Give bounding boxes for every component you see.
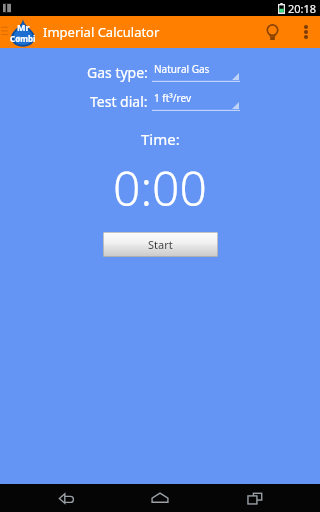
staticText: Mr [17,21,30,33]
staticText: 20:18 [288,1,317,16]
staticText: Start [148,237,173,252]
staticText: Imperial Calculator [43,23,160,41]
staticText: Combi [10,33,36,44]
staticText: Test dial: [90,92,148,111]
staticText: 1 ft³/rev [154,91,192,105]
button[interactable]: Hints [252,16,292,48]
staticText: Gas type: [87,63,148,82]
button[interactable]: More options [292,16,320,48]
button[interactable]: 1 ft³/rev [152,91,240,111]
button[interactable]: Start [103,232,218,257]
staticText: 0:00 [113,155,207,220]
staticText: Time: [141,129,180,149]
button[interactable]: Home [131,484,189,512]
button[interactable]: Back [37,484,95,512]
button[interactable]: Mr Combi home [9,17,37,47]
staticText: Natural Gas [154,62,210,76]
button[interactable]: Natural Gas [152,62,240,82]
button[interactable]: Recent apps [226,484,284,512]
